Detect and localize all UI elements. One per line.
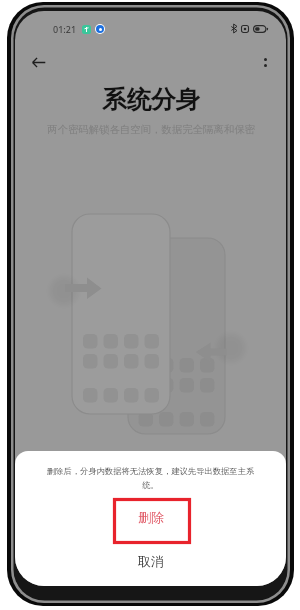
staticText: 删除后，分身内数据将无法恢复，建议先导出数据至主系统。 xyxy=(44,466,257,491)
button[interactable]: Back xyxy=(24,48,53,77)
button[interactable]: 取消 xyxy=(15,546,286,576)
staticText: 01:21 xyxy=(53,23,77,35)
staticText: 两个密码解锁各自空间，数据完全隔离和保密 xyxy=(47,123,255,136)
staticText: 系统分身 xyxy=(102,84,200,115)
button[interactable]: More options xyxy=(254,51,276,73)
button[interactable]: 删除 xyxy=(15,499,286,535)
staticText: 删除 xyxy=(138,509,164,525)
staticText: 取消 xyxy=(138,553,164,569)
